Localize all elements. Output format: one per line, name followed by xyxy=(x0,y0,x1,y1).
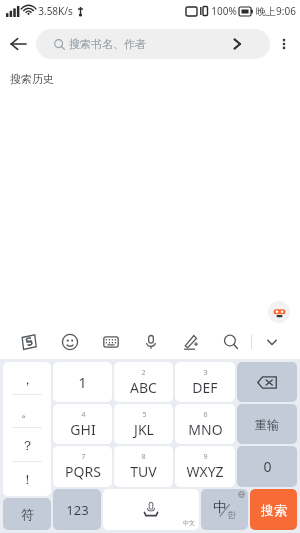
staticText: DEF xyxy=(192,378,218,397)
staticText: 。 xyxy=(21,404,34,420)
staticText: 6 xyxy=(203,410,208,420)
button[interactable]: 9 xyxy=(175,446,235,487)
staticText: GHI xyxy=(70,420,96,439)
staticText: ？ xyxy=(21,437,34,453)
staticText: 7 xyxy=(81,452,86,462)
staticText: 中 xyxy=(213,499,227,517)
button[interactable]: 0 xyxy=(237,446,297,487)
staticText: 中文 xyxy=(183,519,195,527)
staticText: 한 xyxy=(227,509,236,520)
button[interactable]: 3 xyxy=(175,362,235,402)
staticText: 1 xyxy=(78,372,87,392)
staticText: 重输 xyxy=(255,417,279,432)
button[interactable]: 8 xyxy=(114,446,173,487)
button[interactable]: Back xyxy=(0,22,36,66)
staticText: MNO xyxy=(188,420,223,439)
button[interactable]: 6 xyxy=(175,404,235,444)
button[interactable]: 搜索书名、作者 xyxy=(36,29,270,59)
staticText: 9 xyxy=(203,452,208,462)
staticText: 100% xyxy=(211,4,237,18)
button[interactable]: Emoji xyxy=(49,325,90,359)
staticText: 5 xyxy=(142,410,147,420)
button[interactable]: More options xyxy=(270,22,298,66)
button[interactable]: Voice input xyxy=(131,325,171,359)
staticText: 搜索 xyxy=(261,502,287,518)
staticText: 0 xyxy=(263,457,272,476)
button[interactable]: Backspace xyxy=(237,362,297,402)
button[interactable]: Keyboard layout xyxy=(90,325,131,359)
staticText: 8 xyxy=(141,452,146,462)
button[interactable]: ， xyxy=(3,362,51,395)
button[interactable]: Switch language xyxy=(201,489,248,530)
staticText: ABC xyxy=(130,378,157,397)
button[interactable]: Space xyxy=(103,489,199,530)
button[interactable]: 。 xyxy=(3,395,51,428)
staticText: WXYZ xyxy=(186,462,224,481)
button[interactable]: Sogou input xyxy=(8,325,49,359)
staticText: JKL xyxy=(134,420,154,439)
button[interactable]: ！ xyxy=(3,462,51,496)
button[interactable]: 7 xyxy=(53,446,112,487)
staticText: 123 xyxy=(66,501,89,519)
staticText: ！ xyxy=(21,471,34,487)
button[interactable]: Assistant xyxy=(268,301,290,323)
staticText: 4 xyxy=(81,410,86,420)
staticText: 符 xyxy=(21,506,34,522)
button[interactable]: 搜索 xyxy=(250,489,297,530)
button[interactable]: ？ xyxy=(3,428,51,462)
button[interactable]: Handwriting xyxy=(171,325,211,359)
staticText: 搜索历史 xyxy=(10,72,54,86)
button[interactable]: Search xyxy=(211,325,251,359)
button[interactable]: 5 xyxy=(114,404,173,444)
button[interactable]: 1 xyxy=(53,362,112,402)
staticText: 3.58K/s xyxy=(38,4,73,18)
button[interactable]: 符 xyxy=(3,498,51,530)
staticText: PQRS xyxy=(65,462,101,481)
button[interactable]: 重输 xyxy=(237,404,297,444)
staticText: 3 xyxy=(203,368,208,378)
staticText: TUV xyxy=(130,462,157,481)
staticText: ， xyxy=(21,371,34,387)
button[interactable]: Hide keyboard xyxy=(252,325,292,359)
staticText: 2 xyxy=(141,368,146,378)
staticText: 晚上9:06 xyxy=(256,4,296,18)
staticText: 搜索书名、作者 xyxy=(69,37,146,51)
button[interactable]: 123 xyxy=(53,489,101,530)
button[interactable]: 2 xyxy=(114,362,173,402)
button[interactable]: 4 xyxy=(53,404,112,444)
